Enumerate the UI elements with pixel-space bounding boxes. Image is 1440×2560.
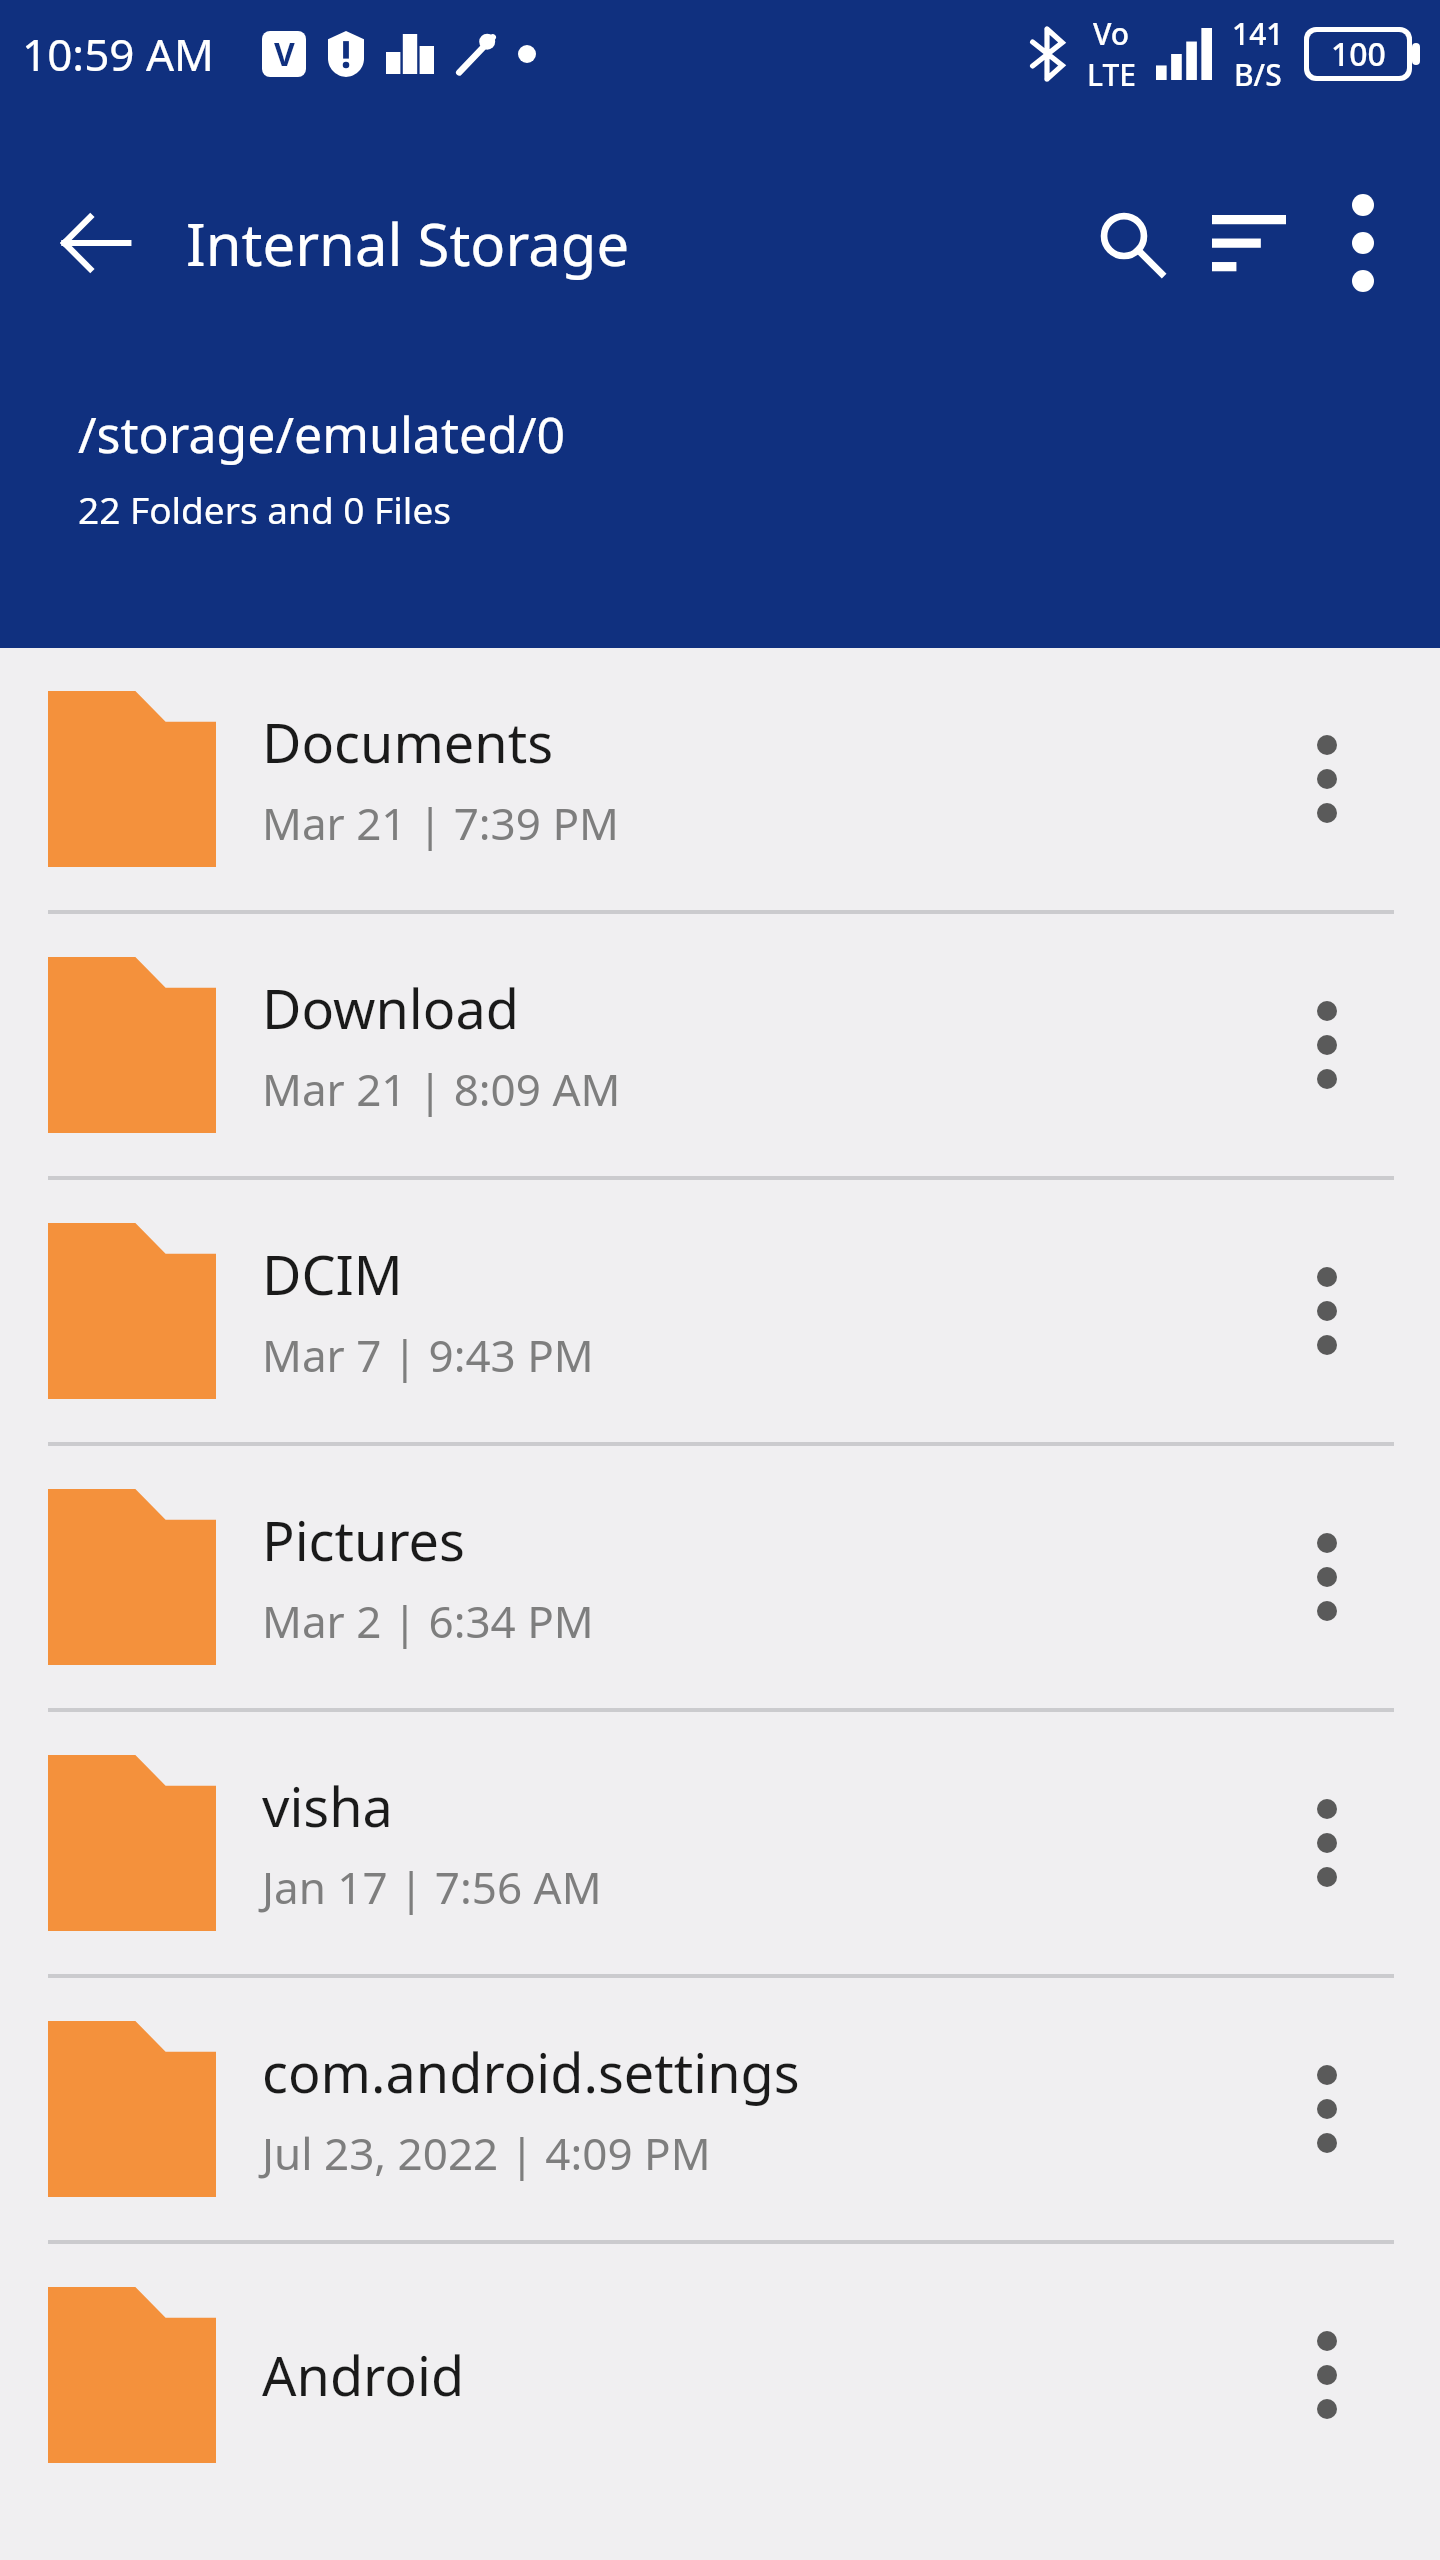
- staticText: Pictures: [262, 1503, 465, 1577]
- button[interactable]: More options for com.android.settings: [1262, 2044, 1392, 2174]
- button[interactable]: More options for DCIM: [1262, 1246, 1392, 1376]
- button[interactable]: com.android.settings: [0, 1978, 1440, 2240]
- staticText: Jan 17 | 7:56 AM: [262, 1857, 602, 1917]
- staticText: 22 Folders and 0 Files: [78, 484, 451, 534]
- staticText: Vo: [1093, 13, 1130, 54]
- staticText: com.android.settings: [262, 2035, 800, 2109]
- staticText: Android: [262, 2338, 465, 2412]
- button[interactable]: Documents: [0, 648, 1440, 910]
- button[interactable]: Search: [1072, 184, 1190, 302]
- staticText: Jul 23, 2022 | 4:09 PM: [262, 2123, 711, 2183]
- staticText: 100: [1331, 32, 1386, 76]
- staticText: visha: [262, 1769, 393, 1843]
- button[interactable]: More options: [1308, 188, 1418, 298]
- button[interactable]: More options for Android: [1262, 2310, 1392, 2440]
- staticText: Download: [262, 971, 519, 1045]
- staticText: Mar 7 | 9:43 PM: [262, 1325, 594, 1385]
- button[interactable]: Back: [40, 187, 152, 299]
- staticText: LTE: [1087, 54, 1136, 95]
- staticText: /storage/emulated/0: [78, 400, 566, 468]
- button[interactable]: More options for Download: [1262, 980, 1392, 1110]
- staticText: B/S: [1234, 54, 1282, 95]
- staticText: Documents: [262, 705, 554, 779]
- button[interactable]: More options for visha: [1262, 1778, 1392, 1908]
- button[interactable]: Download: [0, 914, 1440, 1176]
- button[interactable]: More options for Pictures: [1262, 1512, 1392, 1642]
- button[interactable]: More options for Documents: [1262, 714, 1392, 844]
- button[interactable]: DCIM: [0, 1180, 1440, 1442]
- staticText: Mar 21 | 8:09 AM: [262, 1059, 621, 1119]
- staticText: V: [274, 32, 295, 76]
- staticText: DCIM: [262, 1237, 403, 1311]
- staticText: Mar 21 | 7:39 PM: [262, 793, 619, 853]
- staticText: 141: [1232, 13, 1284, 54]
- staticText: 10:59 AM: [22, 24, 214, 84]
- staticText: Internal Storage: [186, 204, 630, 283]
- button[interactable]: Pictures: [0, 1446, 1440, 1708]
- button[interactable]: Sort: [1190, 184, 1308, 302]
- button[interactable]: Android: [0, 2244, 1440, 2506]
- button[interactable]: visha: [0, 1712, 1440, 1974]
- staticText: Mar 2 | 6:34 PM: [262, 1591, 594, 1651]
